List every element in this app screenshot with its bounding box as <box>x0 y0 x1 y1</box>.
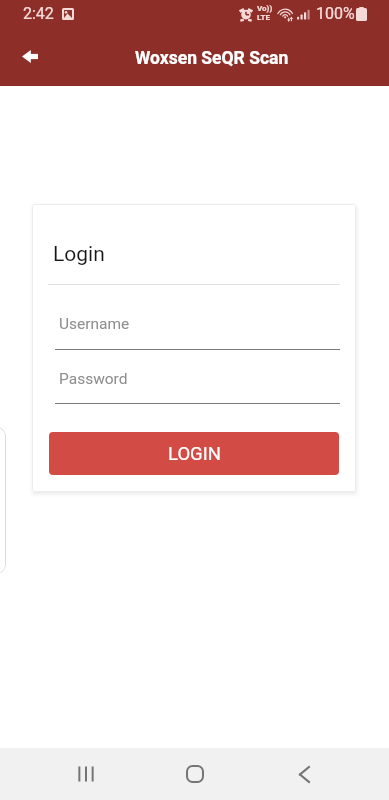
staticText: Password <box>59 370 128 388</box>
staticText: LOGIN <box>168 443 221 465</box>
button[interactable]: Navigate up <box>8 36 52 76</box>
staticText: Username <box>59 315 130 333</box>
staticText: Login <box>53 242 105 267</box>
staticText: 2:42 <box>23 4 54 23</box>
staticText: Vo)) <box>257 4 273 13</box>
button[interactable]: Recent apps <box>62 750 110 798</box>
button[interactable]: Back <box>280 750 328 798</box>
button[interactable]: Home <box>171 750 219 798</box>
button[interactable]: LOGIN <box>49 432 339 475</box>
staticText: 100% <box>316 4 355 23</box>
staticText: Woxsen SeQR Scan <box>135 48 289 69</box>
staticText: LTE <box>257 13 270 22</box>
